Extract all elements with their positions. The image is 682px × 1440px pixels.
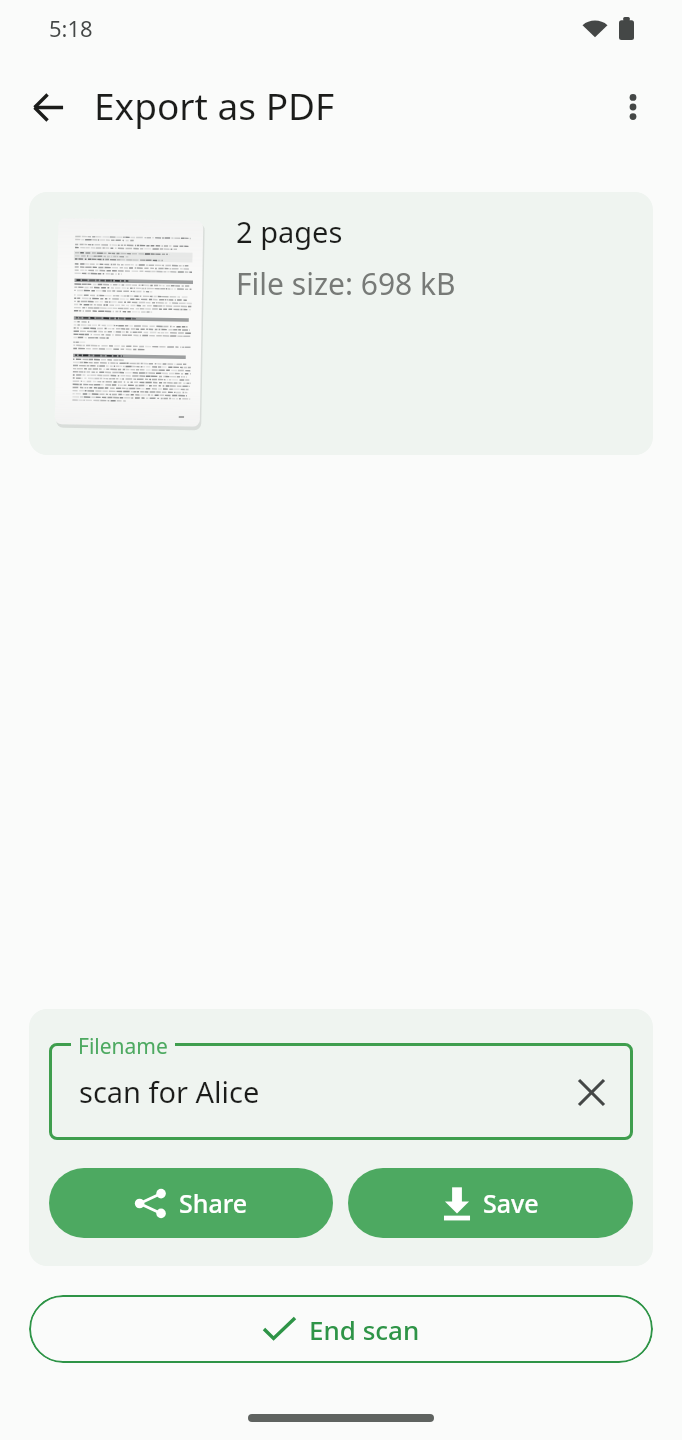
staticText: Save: [483, 1186, 539, 1220]
staticText: 2 pages: [236, 212, 343, 251]
staticText: End scan: [309, 1312, 420, 1347]
staticText: Share: [179, 1186, 248, 1220]
button[interactable]: Back: [24, 83, 72, 131]
staticText: File size: 698 kB: [236, 263, 456, 304]
button[interactable]: Share: [49, 1168, 333, 1238]
staticText: 5:18: [49, 13, 93, 43]
button[interactable]: More options: [609, 83, 657, 131]
staticText: Export as PDF: [94, 80, 335, 130]
staticText: scan for Alice: [79, 1072, 260, 1111]
button[interactable]: Save: [348, 1168, 633, 1238]
button[interactable]: Clear filename: [569, 1070, 613, 1114]
staticText: Filename: [78, 1032, 168, 1061]
button[interactable]: End scan: [29, 1295, 653, 1363]
button[interactable]: 2 pages: [29, 192, 653, 455]
button[interactable]: scan for Alice: [49, 1043, 633, 1140]
